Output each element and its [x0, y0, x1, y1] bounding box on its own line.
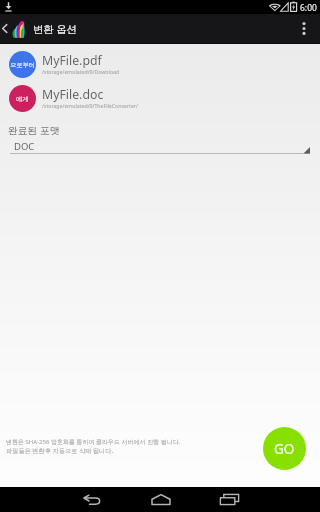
staticText: GO [274, 440, 295, 458]
button[interactable]: Back [0, 14, 10, 43]
button[interactable]: DOC [8, 138, 312, 156]
button[interactable]: Home [140, 487, 181, 512]
button[interactable]: 으로부터 [0, 47, 320, 83]
staticText: 에게 [16, 95, 29, 103]
staticText: 6:00 [300, 2, 317, 14]
button[interactable]: Recent apps [209, 487, 250, 512]
staticText: 변환 옵션 [33, 22, 77, 36]
staticText: 으로부터 [10, 61, 35, 69]
staticText: MyFile.pdf [42, 52, 102, 69]
staticText: /storage/emulated/0/Download [42, 68, 120, 75]
staticText: MyFile.doc [42, 86, 104, 103]
staticText: 파일들은 변환후 자동으로 삭제 됩니다. [6, 446, 114, 454]
button[interactable]: 에게 [0, 81, 320, 117]
staticText: 완료된 포맷 [8, 124, 60, 137]
staticText: DOC [14, 140, 35, 153]
staticText: /storage/emulated/0/TheFileConverter/ [42, 102, 138, 109]
button[interactable]: More options [291, 14, 316, 43]
staticText: 변환은 SHA-256 암호화를 통하여 클라우드 서버에서 진행 됩니다. [6, 438, 181, 446]
button[interactable]: GO [263, 427, 306, 470]
button[interactable]: Back [71, 487, 112, 512]
